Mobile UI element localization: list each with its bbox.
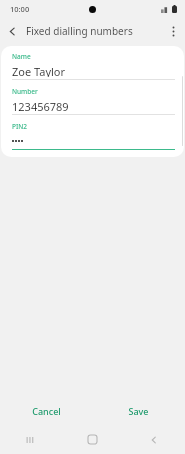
button[interactable]: Home (61, 425, 123, 454)
staticText: Fixed dialling numbers (26, 24, 133, 38)
staticText: 10:00 (10, 4, 30, 14)
staticText: Name (12, 52, 31, 61)
button[interactable]: Number (12, 87, 175, 115)
staticText: PIN2 (12, 122, 28, 131)
button[interactable]: Cancel (0, 396, 92, 425)
staticText: Zoe Taylor (12, 64, 66, 77)
staticText: Save (128, 405, 149, 417)
staticText: Cancel (32, 405, 61, 417)
button[interactable]: More options (161, 19, 185, 43)
button[interactable]: Back (123, 425, 185, 454)
staticText: 123456789 (12, 99, 69, 112)
staticText: Number (12, 87, 38, 96)
button[interactable]: Recent apps (0, 425, 61, 454)
button[interactable]: Name (12, 52, 175, 80)
button[interactable]: Back (0, 19, 24, 43)
button[interactable]: Save (92, 396, 185, 425)
button[interactable]: PIN2 (12, 122, 175, 150)
